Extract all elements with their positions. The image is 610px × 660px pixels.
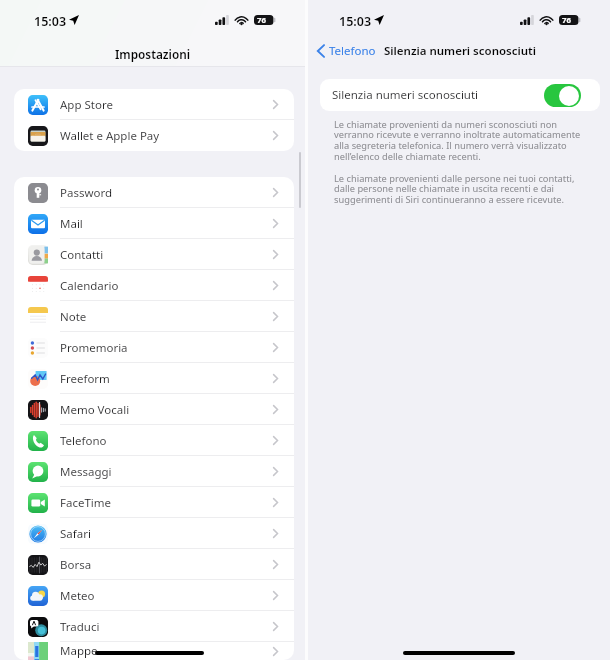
staticText: Borsa [60,557,92,573]
button[interactable]: Telefono [14,425,294,456]
button[interactable]: Contatti [14,239,294,270]
button[interactable]: Memo Vocali [14,394,294,425]
button[interactable]: Mappe [14,642,294,660]
button[interactable]: Meteo [14,580,294,611]
button[interactable]: Calendario [14,270,294,301]
button[interactable]: Promemoria [14,332,294,363]
staticText: 15:03 [34,13,67,30]
staticText: Freeform [60,371,110,387]
staticText: Password [60,185,113,201]
staticText: Traduci [60,619,100,635]
button[interactable]: Silenzia numeri sconosciuti [320,79,600,111]
staticText: Silenzia numeri sconosciuti [384,43,537,59]
button[interactable]: Freeform [14,363,294,394]
staticText: Safari [60,526,91,542]
button[interactable]: Messaggi [14,456,294,487]
staticText: Telefono [60,433,107,449]
button[interactable]: FaceTime [14,487,294,518]
button[interactable]: App Store [14,89,294,120]
staticText: 76 [562,15,571,26]
staticText: Note [60,309,87,325]
staticText: Mappe [60,643,98,659]
staticText: Telefono [329,43,376,59]
staticText: FaceTime [60,495,112,511]
button[interactable]: Mail [14,208,294,239]
staticText: Impostazioni [115,46,191,62]
button[interactable]: Wallet e Apple Pay [14,120,294,151]
staticText: Promemoria [60,340,128,356]
staticText: Contatti [60,247,104,263]
button[interactable]: Password [14,177,294,208]
staticText: Wallet e Apple Pay [60,128,160,144]
button[interactable]: Safari [14,518,294,549]
staticText: Silenzia numeri sconosciuti [332,87,479,103]
staticText: Messaggi [60,464,112,480]
staticText: Memo Vocali [60,402,130,418]
button[interactable]: Indietro Telefono [317,43,376,59]
button[interactable]: Borsa [14,549,294,580]
staticText: Calendario [60,278,119,294]
staticText: Le chiamate provenienti dalle persone ne… [334,172,592,206]
staticText: Le chiamate provenienti da numeri sconos… [334,118,592,163]
staticText: App Store [60,97,113,113]
button[interactable]: Note [14,301,294,332]
button[interactable]: Traduci [14,611,294,642]
staticText: 76 [257,15,266,26]
button[interactable]: Attiva o disattiva Silenzia numeri scono… [544,84,581,107]
staticText: Meteo [60,588,95,604]
staticText: Mail [60,216,83,232]
staticText: 15:03 [339,13,372,30]
